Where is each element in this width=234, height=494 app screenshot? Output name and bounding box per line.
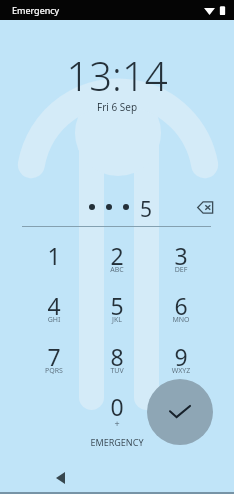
staticText: +: [87, 417, 147, 429]
staticText: 4: [24, 290, 84, 321]
button[interactable]: EMERGENCY: [0, 436, 234, 448]
staticText: PQRS: [24, 366, 84, 376]
button[interactable]: 1: [24, 240, 84, 286]
staticText: Emergency: [12, 4, 60, 16]
staticText: 13:14: [0, 48, 234, 102]
staticText: WXYZ: [151, 366, 211, 376]
staticText: 8: [87, 341, 147, 372]
button[interactable]: Backspace: [192, 194, 218, 220]
staticText: 0: [87, 391, 147, 422]
staticText: JKL: [87, 315, 147, 325]
staticText: 3: [151, 240, 211, 271]
staticText: 1: [24, 240, 84, 271]
button[interactable]: Enter: [147, 379, 213, 445]
button[interactable]: 2: [87, 240, 147, 286]
button[interactable]: 6: [151, 290, 211, 336]
staticText: 9: [151, 341, 211, 372]
staticText: MNO: [151, 315, 211, 325]
button[interactable]: 7: [24, 341, 84, 387]
staticText: DEF: [151, 265, 211, 275]
staticText: Fri 6 Sep: [0, 100, 234, 114]
button[interactable]: 4: [24, 290, 84, 336]
button[interactable]: 5: [87, 290, 147, 336]
button[interactable]: 3: [151, 240, 211, 286]
button[interactable]: 0: [87, 391, 147, 437]
button[interactable]: Back: [47, 465, 73, 491]
button[interactable]: 9: [151, 341, 211, 387]
staticText: TUV: [87, 366, 147, 376]
staticText: 5: [87, 290, 147, 321]
staticText: 5: [140, 195, 153, 219]
staticText: 2: [87, 240, 147, 271]
staticText: 7: [24, 341, 84, 372]
staticText: ABC: [87, 265, 147, 275]
staticText: GHI: [24, 315, 84, 325]
button[interactable]: 8: [87, 341, 147, 387]
staticText: 6: [151, 290, 211, 321]
